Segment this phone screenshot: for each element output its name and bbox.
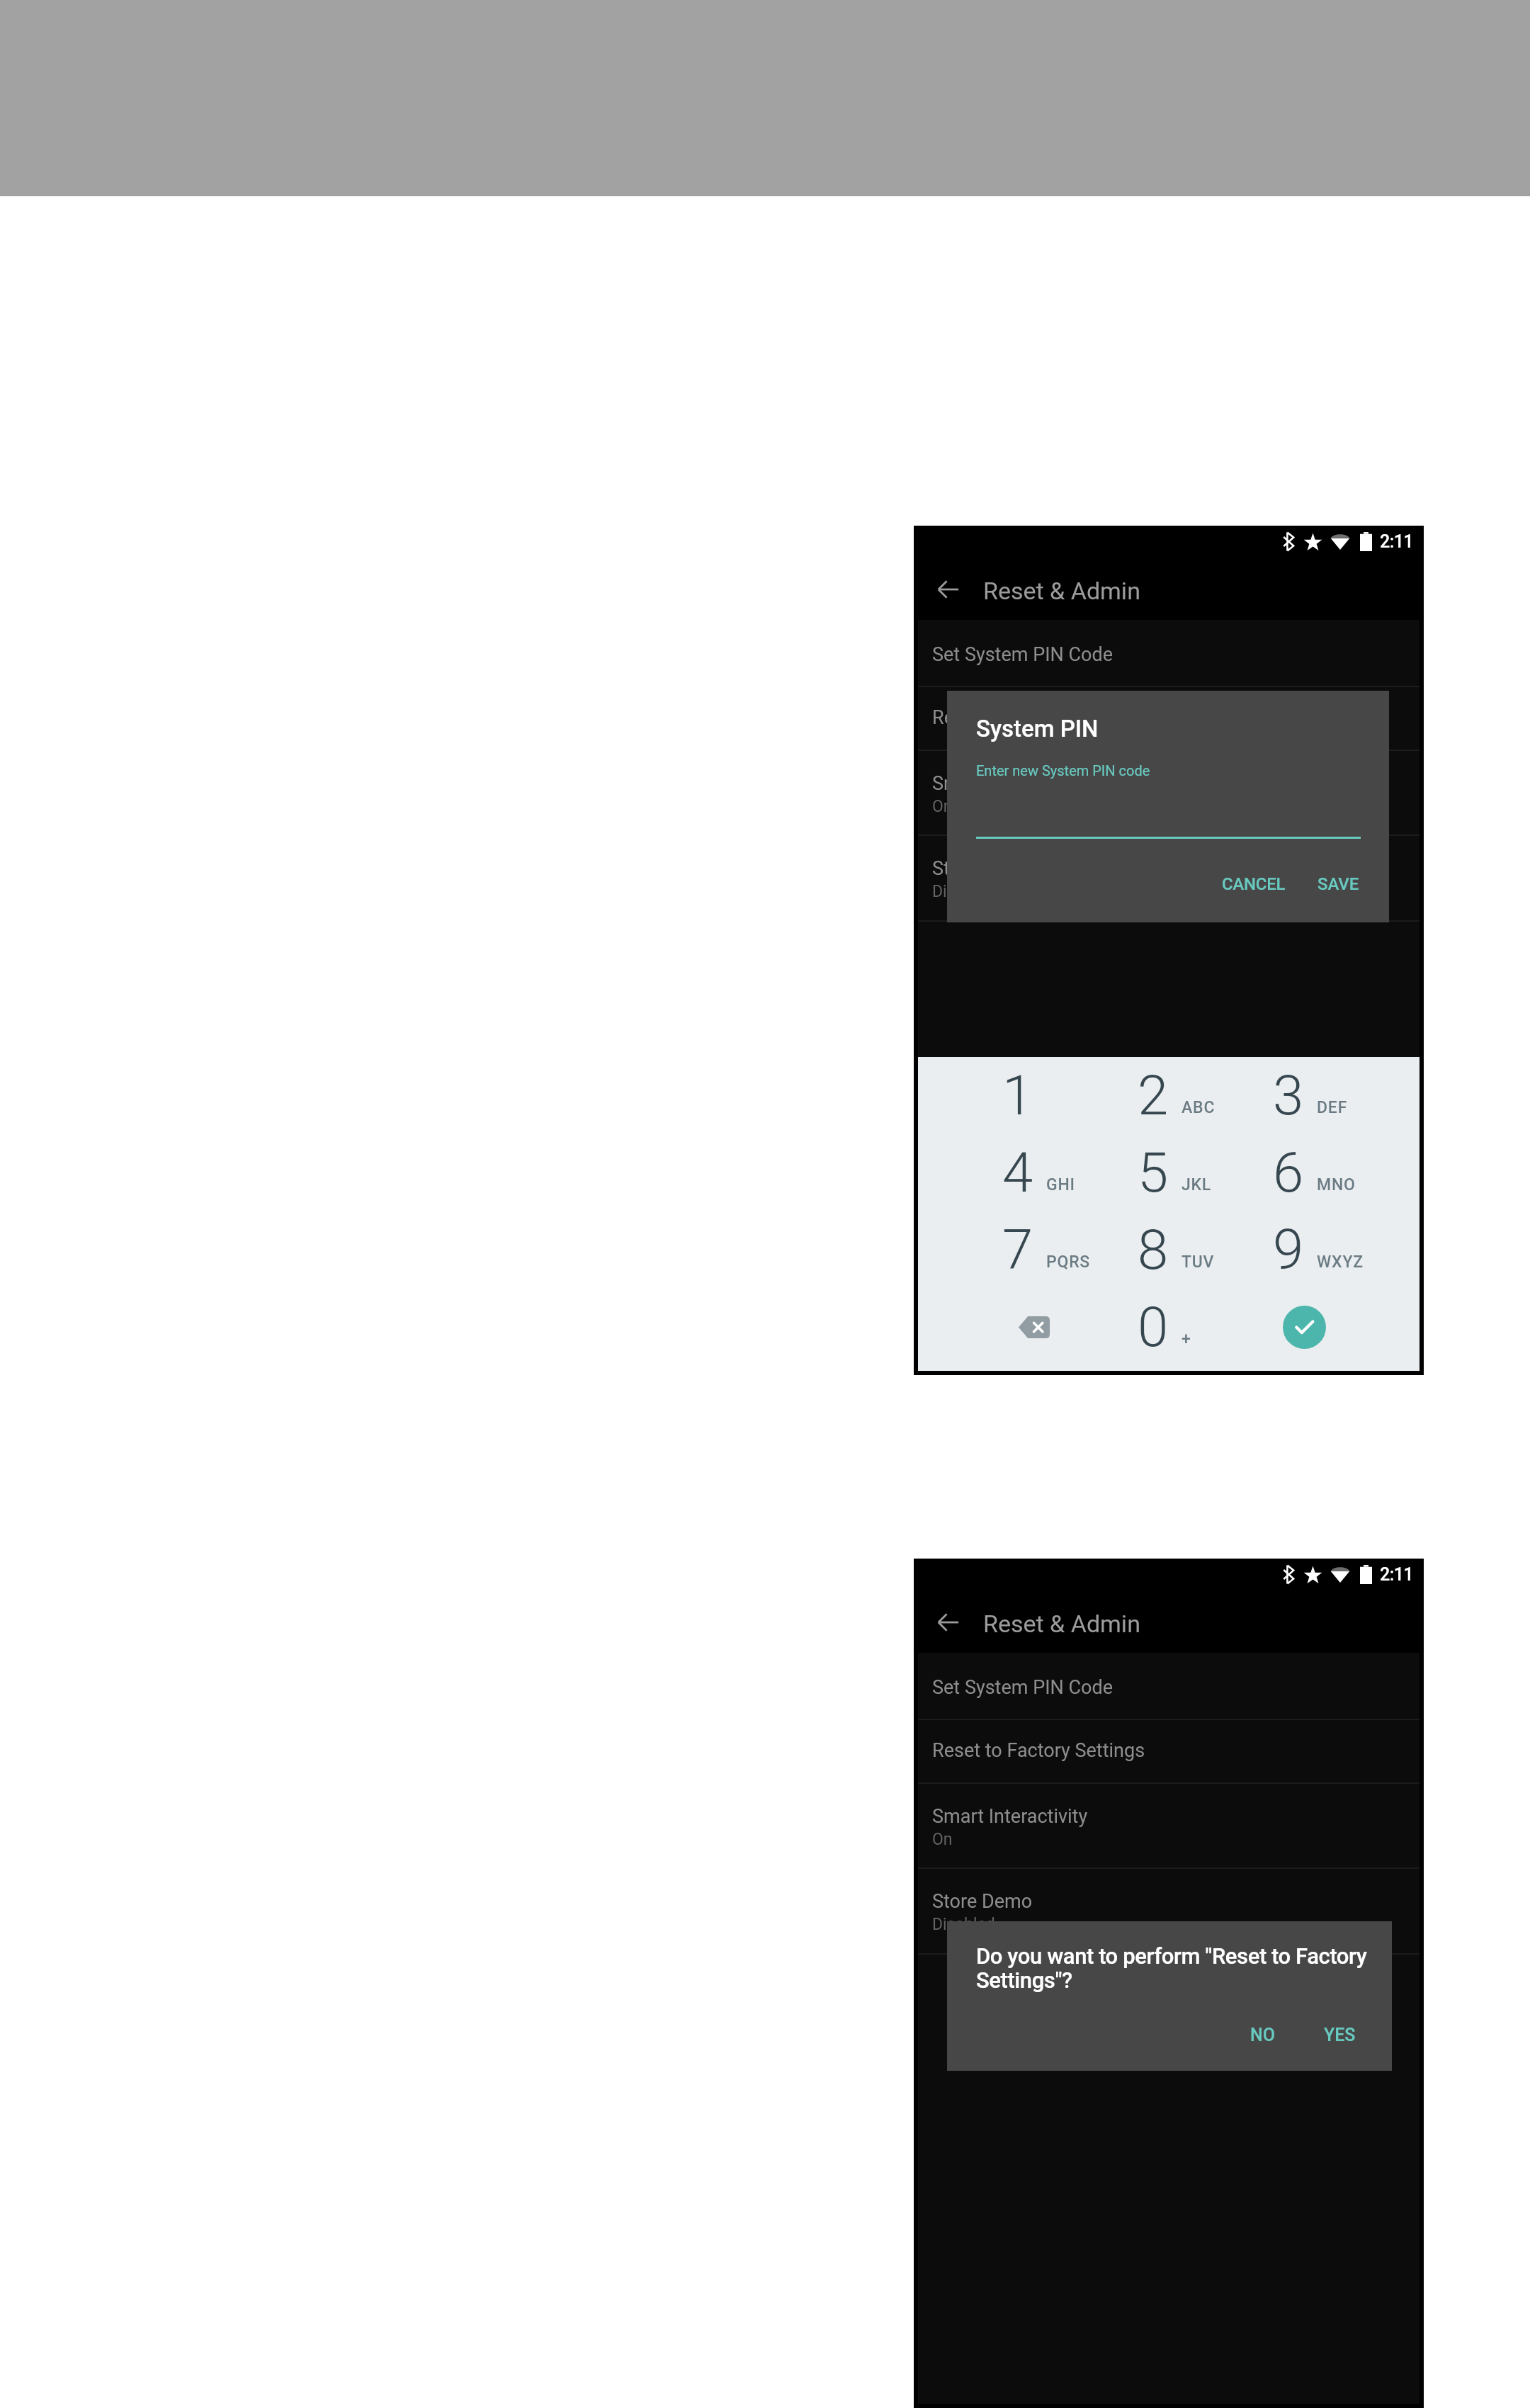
button[interactable]: 7 xyxy=(966,1211,1101,1289)
staticText: System PIN xyxy=(976,715,1099,742)
staticText: 2:11 xyxy=(1380,531,1414,552)
button[interactable]: 2 xyxy=(1101,1057,1237,1134)
staticText: WXYZ xyxy=(1317,1253,1364,1272)
button[interactable]: Smart Interactivity xyxy=(918,751,1419,835)
staticText: Reset & Admin xyxy=(983,1610,1140,1638)
button[interactable]: Back xyxy=(929,1603,968,1641)
staticText: 2:11 xyxy=(1380,1564,1414,1585)
staticText: CANCEL xyxy=(1222,874,1286,894)
staticText: Smart Interactivity xyxy=(932,772,1088,795)
staticText: GHI xyxy=(1046,1175,1075,1194)
staticText: ABC xyxy=(1181,1098,1215,1117)
staticText: MNO xyxy=(1317,1175,1356,1194)
staticText: 4 xyxy=(1002,1141,1033,1205)
button[interactable]: 4 xyxy=(966,1134,1101,1211)
button[interactable]: 9 xyxy=(1237,1211,1372,1289)
button[interactable]: CANCEL xyxy=(1212,867,1296,901)
button[interactable]: Store Demo xyxy=(918,836,1419,920)
staticText: On xyxy=(932,1830,953,1849)
button[interactable]: Smart Interactivity xyxy=(918,1784,1419,1867)
staticText: 7 xyxy=(1002,1218,1033,1282)
staticText: PQRS xyxy=(1046,1253,1091,1272)
button[interactable]: Store Demo xyxy=(918,1869,1419,1953)
staticText: Disabled xyxy=(932,1915,995,1934)
staticText: 6 xyxy=(1273,1141,1304,1205)
staticText: YES xyxy=(1324,2025,1356,2045)
staticText: SAVE xyxy=(1317,874,1359,894)
button[interactable]: SAVE xyxy=(1308,867,1369,901)
button[interactable]: 0 xyxy=(1101,1289,1237,1366)
button[interactable]: NO xyxy=(1240,2018,1286,2052)
staticText: 1 xyxy=(1002,1063,1033,1128)
staticText: JKL xyxy=(1181,1175,1212,1194)
staticText: 0 xyxy=(1138,1295,1169,1360)
button[interactable]: Backspace xyxy=(966,1289,1101,1366)
staticText: Smart Interactivity xyxy=(932,1805,1088,1828)
staticText: Reset to Factory Settings xyxy=(932,1739,1145,1762)
staticText: Disabled xyxy=(932,882,995,901)
staticText: Set System PIN Code xyxy=(932,1676,1113,1699)
staticText: Enter new System PIN code xyxy=(976,762,1150,779)
staticText: Store Demo xyxy=(932,1890,1033,1913)
button[interactable]: Reset to Factory Settings xyxy=(918,687,1419,750)
button[interactable]: 8 xyxy=(1101,1211,1237,1289)
staticText: Store Demo xyxy=(932,857,1033,880)
staticText: 3 xyxy=(1273,1063,1304,1128)
button[interactable]: Confirm xyxy=(1237,1289,1372,1366)
staticText: Reset to Factory Settings xyxy=(932,706,1145,729)
staticText: 5 xyxy=(1138,1141,1169,1205)
staticText: NO xyxy=(1250,2025,1276,2045)
button[interactable]: YES xyxy=(1314,2018,1366,2052)
staticText: Reset & Admin xyxy=(983,577,1140,605)
button[interactable]: Set System PIN Code xyxy=(918,1653,1419,1719)
staticText: + xyxy=(1181,1330,1191,1349)
button[interactable]: 3 xyxy=(1237,1057,1372,1134)
staticText: 2 xyxy=(1138,1063,1169,1128)
button[interactable]: 6 xyxy=(1237,1134,1372,1211)
staticText: 8 xyxy=(1138,1218,1169,1282)
staticText: Do you want to perform "Reset to Factory… xyxy=(976,1943,1367,1993)
button[interactable]: 1 xyxy=(966,1057,1101,1134)
button[interactable]: Reset to Factory Settings xyxy=(918,1720,1419,1782)
staticText: 9 xyxy=(1273,1218,1304,1282)
staticText: TUV xyxy=(1181,1253,1215,1272)
button[interactable]: Set System PIN Code xyxy=(918,620,1419,686)
staticText: On xyxy=(932,797,953,816)
button[interactable]: 5 xyxy=(1101,1134,1237,1211)
staticText: Set System PIN Code xyxy=(932,643,1113,666)
button[interactable]: Back xyxy=(929,570,968,609)
staticText: DEF xyxy=(1317,1098,1348,1117)
